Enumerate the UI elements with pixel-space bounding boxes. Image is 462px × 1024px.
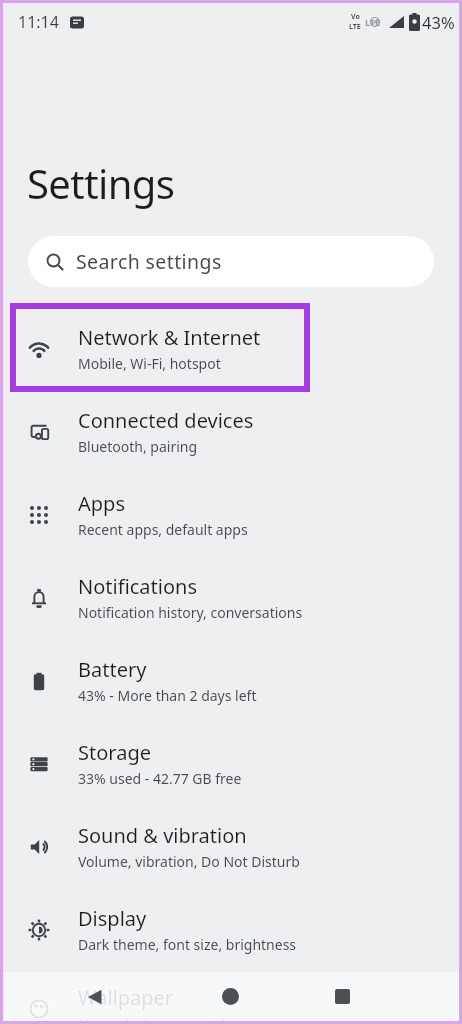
button[interactable]: Wallpaper	[0, 967, 462, 1024]
button[interactable]: Search settings	[28, 236, 434, 287]
staticText: LTE	[365, 16, 381, 28]
staticText: Mobile, Wi-Fi, hotspot	[78, 354, 221, 373]
staticText: Display	[78, 905, 147, 932]
staticText: Volume, vibration, Do Not Disturb	[78, 852, 300, 871]
staticText: Settings	[27, 156, 175, 210]
staticText: Apps	[78, 490, 125, 517]
staticText: Home, lock screen styles	[78, 1014, 240, 1024]
staticText: Connected devices	[78, 407, 254, 434]
staticText: LTE	[349, 22, 361, 32]
staticText: Bluetooth, pairing	[78, 437, 198, 456]
button[interactable]	[222, 988, 239, 1005]
button[interactable]: Apps	[0, 473, 462, 556]
staticText: Storage	[78, 739, 151, 766]
staticText: 11:14	[18, 11, 59, 33]
button[interactable]: Storage	[0, 722, 462, 805]
staticText: Notifications	[78, 573, 197, 600]
staticText: Recent apps, default apps	[78, 520, 248, 539]
button[interactable]: Sound & vibration	[0, 805, 462, 888]
staticText: Network & Internet	[78, 324, 261, 351]
button[interactable]: Display	[0, 888, 462, 971]
button[interactable]	[335, 989, 350, 1004]
staticText: Notification history, conversations	[78, 603, 303, 622]
button[interactable]	[87, 989, 103, 1005]
staticText: Dark theme, font size, brightness	[78, 935, 297, 954]
staticText: 43%	[422, 11, 455, 33]
button[interactable]: Battery	[0, 639, 462, 722]
staticText: Battery	[78, 656, 147, 683]
staticText: Search settings	[76, 248, 222, 275]
staticText: Sound & vibration	[78, 822, 247, 849]
staticText: Vo	[351, 12, 360, 22]
staticText: 33% used - 42.77 GB free	[78, 769, 242, 788]
button[interactable]: Connected devices	[0, 390, 462, 473]
button[interactable]: Network & Internet	[0, 307, 462, 390]
staticText: 43% - More than 2 days left	[78, 686, 257, 705]
button[interactable]: Notifications	[0, 556, 462, 639]
staticText: Wallpaper	[78, 984, 174, 1011]
